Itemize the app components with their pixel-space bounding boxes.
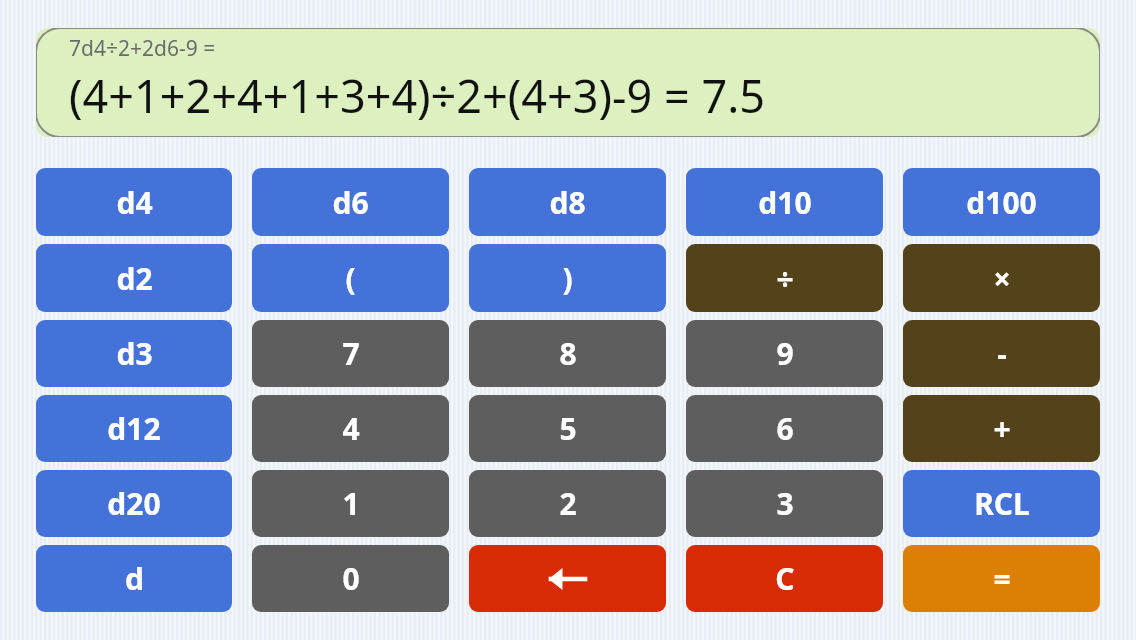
staticText: ÷ bbox=[776, 258, 794, 299]
staticText: d3 bbox=[116, 333, 153, 374]
button[interactable]: ÷ bbox=[686, 244, 883, 312]
staticText: 7 bbox=[342, 333, 360, 374]
staticText: 2 bbox=[559, 483, 577, 524]
staticText: - bbox=[997, 333, 1007, 374]
staticText: 6 bbox=[776, 408, 794, 449]
button[interactable]: 6 bbox=[686, 395, 883, 462]
button[interactable]: + bbox=[903, 395, 1100, 462]
staticText: C bbox=[775, 558, 795, 599]
button[interactable]: RCL bbox=[903, 470, 1100, 537]
button[interactable]: 9 bbox=[686, 320, 883, 387]
button[interactable]: 5 bbox=[469, 395, 666, 462]
button[interactable]: d4 bbox=[36, 168, 232, 236]
button[interactable]: d8 bbox=[469, 168, 666, 236]
staticText: 3 bbox=[776, 483, 794, 524]
button[interactable]: Backspace bbox=[469, 545, 666, 612]
button[interactable]: 0 bbox=[252, 545, 449, 612]
staticText: d100 bbox=[966, 182, 1037, 223]
staticText: 5 bbox=[559, 408, 577, 449]
button[interactable]: ( bbox=[252, 244, 449, 312]
button[interactable]: 7 bbox=[252, 320, 449, 387]
button[interactable]: 1 bbox=[252, 470, 449, 537]
staticText: (4+1+2+4+1+3+4)÷2+(4+3)-9 = 7.5 bbox=[69, 65, 765, 126]
button[interactable]: d bbox=[36, 545, 232, 612]
staticText: d20 bbox=[107, 483, 161, 524]
button[interactable]: = bbox=[903, 545, 1100, 612]
button[interactable]: 4 bbox=[252, 395, 449, 462]
staticText: = bbox=[993, 558, 1011, 599]
button[interactable]: d3 bbox=[36, 320, 232, 387]
button[interactable]: - bbox=[903, 320, 1100, 387]
button[interactable]: 2 bbox=[469, 470, 666, 537]
button[interactable]: d100 bbox=[903, 168, 1100, 236]
staticText: 9 bbox=[776, 333, 794, 374]
button[interactable]: d20 bbox=[36, 470, 232, 537]
button[interactable]: d10 bbox=[686, 168, 883, 236]
staticText: d6 bbox=[332, 182, 369, 223]
button[interactable]: ) bbox=[469, 244, 666, 312]
staticText: + bbox=[993, 408, 1011, 449]
staticText: 0 bbox=[342, 558, 360, 599]
button[interactable]: 7d4÷2+2d6-9 = bbox=[36, 28, 1100, 137]
staticText: 7d4÷2+2d6-9 = bbox=[69, 34, 216, 63]
staticText: × bbox=[993, 258, 1011, 299]
staticText: 8 bbox=[559, 333, 577, 374]
staticText: d8 bbox=[549, 182, 586, 223]
staticText: 1 bbox=[342, 483, 360, 524]
staticText: d bbox=[125, 558, 144, 599]
staticText: ( bbox=[345, 258, 356, 299]
button[interactable]: × bbox=[903, 244, 1100, 312]
button[interactable]: d6 bbox=[252, 168, 449, 236]
staticText: RCL bbox=[974, 483, 1030, 524]
staticText: 4 bbox=[342, 408, 360, 449]
button[interactable]: 3 bbox=[686, 470, 883, 537]
button[interactable]: d2 bbox=[36, 244, 232, 312]
button[interactable]: d12 bbox=[36, 395, 232, 462]
staticText: ) bbox=[562, 258, 573, 299]
staticText: d2 bbox=[116, 258, 153, 299]
button[interactable]: C bbox=[686, 545, 883, 612]
staticText: d12 bbox=[107, 408, 161, 449]
staticText: d4 bbox=[116, 182, 153, 223]
button[interactable]: 8 bbox=[469, 320, 666, 387]
staticText: d10 bbox=[758, 182, 812, 223]
